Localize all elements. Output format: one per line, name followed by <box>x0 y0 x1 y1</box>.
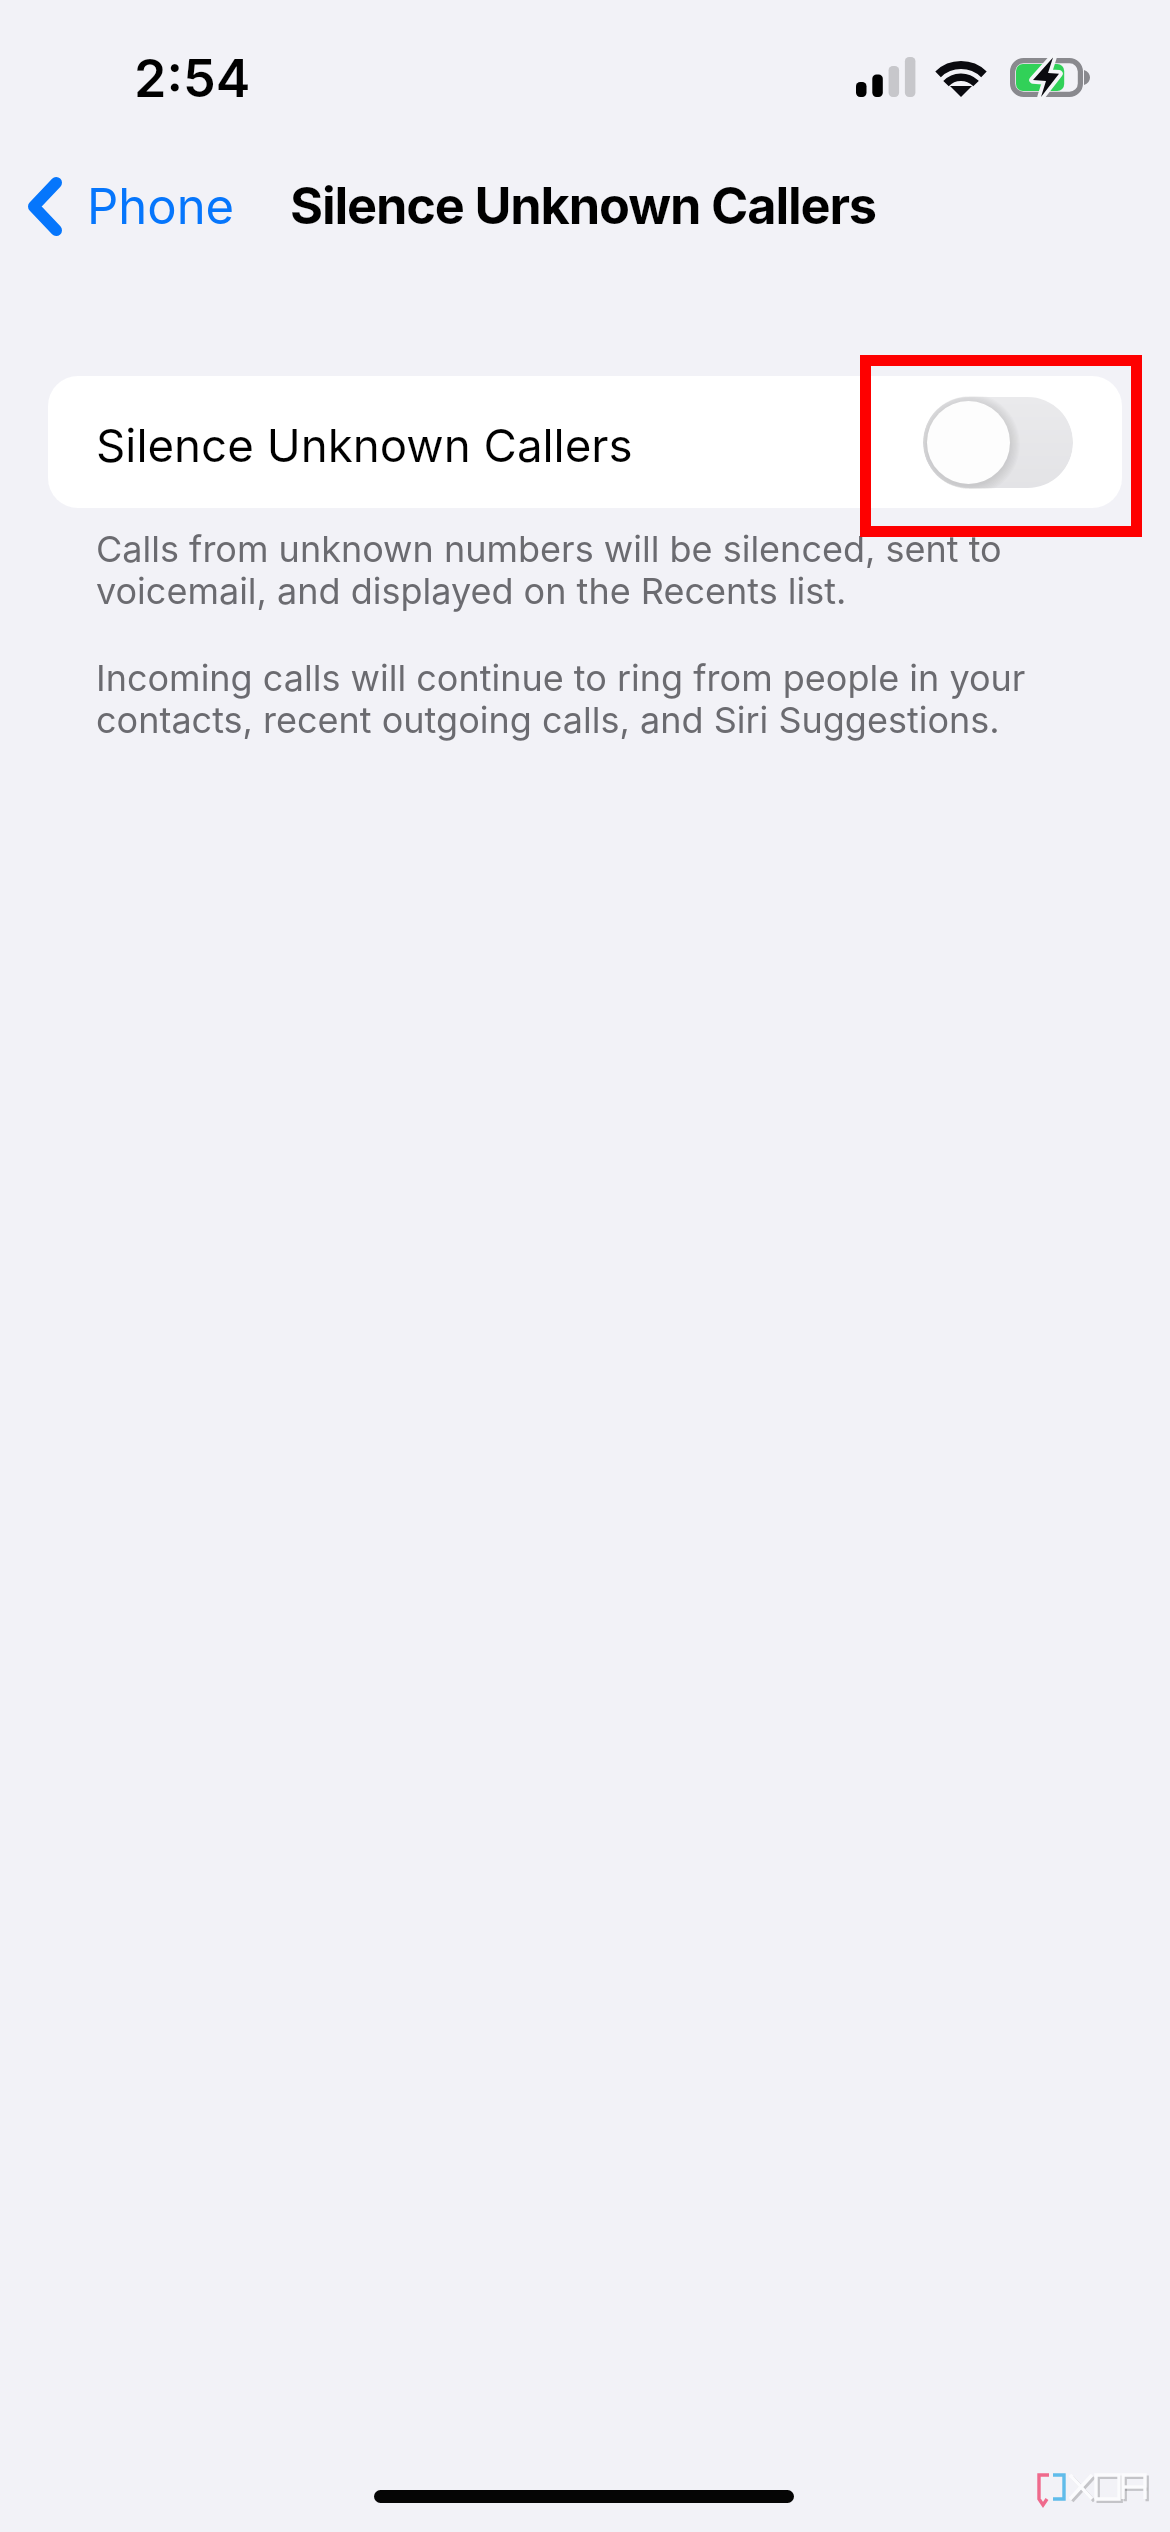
staticText: Incoming calls will continue to ring fro… <box>96 656 1032 741</box>
button[interactable]: Silence Unknown Callers <box>48 376 1122 508</box>
button[interactable]: Silence Unknown Callers toggle <box>923 396 1073 489</box>
staticText: Silence Unknown Callers <box>96 418 633 473</box>
staticText: Calls from unknown numbers will be silen… <box>96 527 1032 612</box>
button[interactable]: Back to Phone <box>8 171 249 242</box>
staticText: 2:54 <box>134 47 251 110</box>
staticText: Silence Unknown Callers <box>290 175 876 236</box>
staticText: Phone <box>87 177 235 236</box>
